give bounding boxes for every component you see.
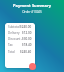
staticText: Delivery (8, 31, 20, 35)
button[interactable]: Subtotal (6, 24, 34, 30)
button[interactable]: Tax (6, 42, 34, 48)
staticText: Discount (8, 37, 21, 41)
staticText: $240.40 (20, 50, 32, 54)
staticText: Subtotal (8, 25, 20, 29)
button[interactable]: Add (29, 63, 36, 70)
staticText: $12.00 (22, 31, 32, 35)
staticText: Total (8, 50, 15, 54)
button[interactable]: Discount (6, 36, 34, 42)
staticText: Payment Summary (13, 3, 51, 8)
staticText: Tax (8, 43, 13, 47)
button[interactable]: Delivery (6, 30, 34, 36)
staticText: -$30.00 (21, 37, 32, 41)
button[interactable]: Total (6, 49, 34, 55)
staticText: $18.40 (22, 43, 32, 47)
staticText: Order #10245 (22, 10, 42, 14)
staticText: $240.00 (20, 25, 32, 29)
